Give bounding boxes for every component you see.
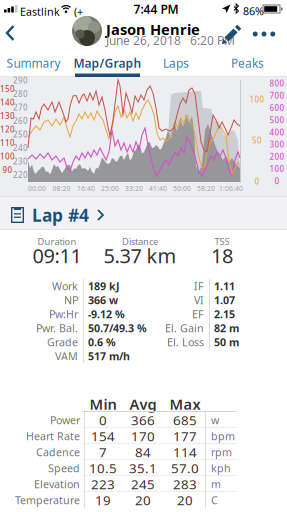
staticText: 7 — [99, 443, 107, 461]
staticText: 82 m — [214, 321, 239, 335]
button[interactable]: Edit — [220, 20, 246, 46]
staticText: 500 — [269, 115, 284, 125]
staticText: Power — [50, 413, 80, 427]
staticText: 220 — [13, 170, 28, 180]
staticText: 280 — [13, 89, 28, 99]
staticText: 1.07 — [214, 293, 235, 307]
staticText: 10.5 — [89, 459, 117, 477]
staticText: 84 — [135, 443, 151, 461]
staticText: 100 — [249, 94, 264, 105]
staticText: 50 m — [214, 335, 239, 349]
staticText: 20 — [177, 491, 193, 509]
staticText: 700 — [269, 90, 284, 101]
staticText: Grade — [47, 335, 78, 349]
button[interactable]: Back — [0, 0, 24, 28]
staticText: Speed — [48, 461, 80, 475]
staticText: 0 — [254, 176, 259, 187]
staticText: 25:00 — [101, 184, 119, 193]
staticText: 800 — [269, 78, 284, 89]
staticText: 177 — [173, 427, 197, 445]
staticText: 223 — [91, 475, 115, 493]
button[interactable]: Map/Graph — [67, 50, 147, 76]
staticText: 245 — [131, 475, 155, 493]
staticText: 58:20 — [197, 184, 215, 193]
staticText: 16:40 — [77, 184, 95, 193]
staticText: 08:20 — [52, 184, 70, 193]
staticText: Temperature — [15, 493, 80, 507]
staticText: Eastlink — [20, 4, 60, 19]
staticText: m — [211, 477, 221, 491]
staticText: 140 — [0, 97, 15, 108]
staticText: 41:40 — [149, 184, 167, 193]
staticText: 290 — [13, 75, 28, 86]
staticText: 154 — [91, 427, 115, 445]
staticText: 130 — [0, 111, 15, 121]
staticText: 114 — [173, 443, 197, 461]
staticText: Heart Rate — [26, 429, 80, 443]
staticText: 35.1 — [129, 459, 157, 477]
staticText: El. Gain — [165, 321, 204, 335]
button[interactable]: Lap #4 — [0, 198, 287, 231]
staticText: 230 — [13, 156, 28, 167]
staticText: Pw:Hr — [49, 307, 78, 321]
staticText: El. Loss — [167, 335, 204, 349]
staticText: Min — [89, 394, 116, 414]
staticText: Jason Henrie — [106, 19, 200, 39]
staticText: 09:11 — [32, 242, 81, 269]
staticText: Laps — [163, 55, 189, 71]
staticText: Work — [52, 279, 78, 293]
staticText: 20 — [135, 491, 151, 509]
staticText: 283 — [173, 475, 197, 493]
button[interactable]: Summary — [0, 50, 66, 76]
staticText: rpm — [211, 445, 232, 459]
staticText: 90 — [2, 165, 12, 175]
staticText: 57.0 — [171, 459, 199, 477]
staticText: 0 — [274, 176, 279, 186]
staticText: 300 — [269, 139, 284, 150]
staticText: 100 — [0, 151, 15, 162]
staticText: 33:20 — [125, 184, 143, 193]
staticText: June 26, 2018 6:20 PM — [106, 32, 235, 48]
staticText: 86% — [243, 4, 264, 18]
staticText: 366 w — [88, 293, 118, 307]
staticText: 600 — [269, 103, 284, 113]
staticText: VI — [194, 293, 204, 307]
staticText: Map/Graph — [73, 55, 141, 71]
staticText: Cadence — [36, 445, 80, 459]
staticText: 517 m/h — [88, 349, 130, 363]
staticText: 0 — [99, 411, 107, 429]
staticText: Max — [169, 394, 200, 414]
staticText: Elevation — [34, 477, 80, 491]
button[interactable]: More — [250, 21, 278, 47]
staticText: 50:00 — [173, 184, 191, 193]
staticText: Avg — [129, 394, 156, 414]
staticText: 250 — [13, 129, 28, 140]
button[interactable]: Laps — [154, 50, 198, 76]
staticText: TSS — [214, 235, 229, 248]
staticText: 150 — [0, 84, 15, 94]
staticText: Pwr. Bal. — [36, 321, 78, 335]
staticText: Lap #4 — [32, 203, 89, 226]
staticText: 189 kJ — [88, 279, 120, 293]
staticText: 110 — [0, 138, 15, 148]
staticText: 100 — [269, 164, 284, 174]
staticText: Summary — [6, 55, 60, 71]
staticText: 2.15 — [214, 307, 235, 321]
staticText: 400 — [269, 127, 284, 138]
staticText: 50.7/49.3 % — [88, 321, 147, 335]
staticText: Peaks — [231, 55, 264, 71]
staticText: 270 — [13, 102, 28, 113]
staticText: 5.37 km — [103, 242, 176, 269]
button[interactable]: Peaks — [223, 50, 271, 76]
staticText: 18 — [211, 242, 233, 269]
staticText: Distance — [122, 235, 158, 248]
staticText: 685 — [173, 411, 197, 429]
staticText: 120 — [0, 124, 15, 135]
staticText: kph — [211, 461, 231, 475]
staticText: 50 — [252, 135, 262, 146]
staticText: 7:44 PM — [133, 1, 178, 17]
staticText: C — [211, 493, 218, 507]
staticText: 0.6 % — [88, 335, 116, 349]
staticText: NP — [64, 293, 78, 307]
staticText: 170 — [131, 427, 155, 445]
